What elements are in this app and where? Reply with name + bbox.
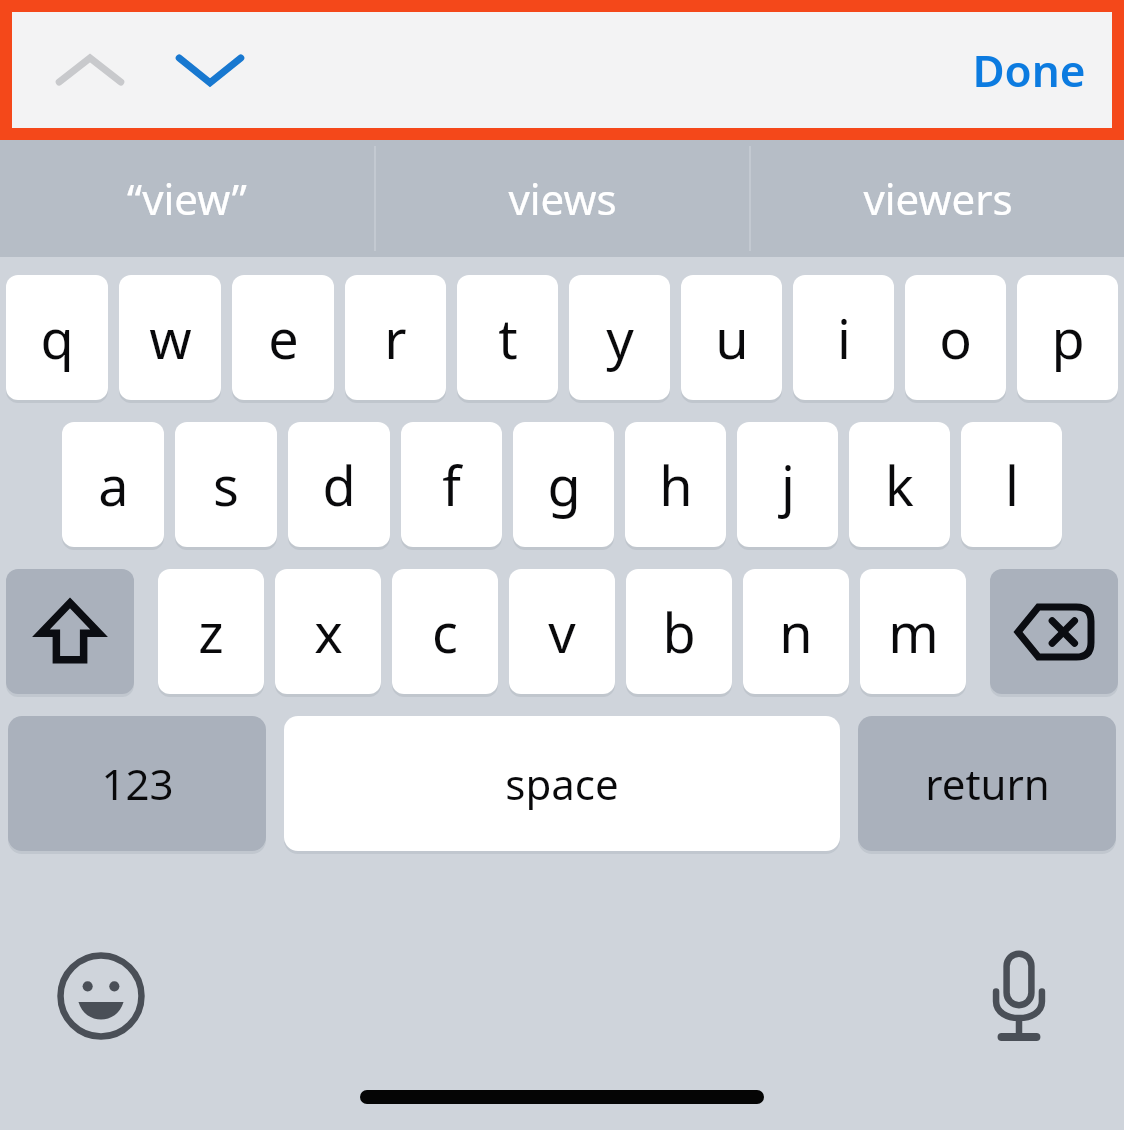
button[interactable]: i	[793, 275, 894, 400]
button[interactable]: u	[681, 275, 782, 400]
staticText: z	[198, 595, 224, 669]
button[interactable]: a	[62, 422, 164, 547]
staticText: l	[1005, 448, 1019, 522]
button[interactable]: v	[509, 569, 615, 694]
staticText: j	[781, 448, 795, 522]
button[interactable]: k	[849, 422, 950, 547]
staticText: h	[659, 448, 693, 522]
button[interactable]: Previous field	[36, 24, 144, 116]
button[interactable]: s	[175, 422, 277, 547]
staticText: t	[498, 301, 518, 375]
button[interactable]: j	[737, 422, 838, 547]
staticText: viewers	[863, 170, 1013, 227]
staticText: views	[508, 170, 617, 227]
button[interactable]: Emoji keyboard	[46, 941, 156, 1051]
staticText: k	[885, 448, 914, 522]
staticText: m	[888, 595, 939, 669]
button[interactable]: space	[284, 716, 840, 851]
staticText: v	[548, 595, 576, 669]
staticText: o	[939, 301, 972, 375]
staticText: r	[384, 301, 407, 375]
button[interactable]: views	[376, 140, 749, 257]
button[interactable]: p	[1017, 275, 1118, 400]
button[interactable]: e	[232, 275, 334, 400]
button[interactable]: y	[569, 275, 670, 400]
button[interactable]: c	[392, 569, 498, 694]
staticText: w	[149, 301, 192, 375]
button[interactable]: o	[905, 275, 1006, 400]
staticText: a	[98, 448, 129, 522]
staticText: g	[547, 448, 581, 522]
staticText: y	[606, 301, 634, 375]
button[interactable]: “view”	[0, 140, 374, 257]
button[interactable]: h	[625, 422, 726, 547]
button[interactable]: 123	[8, 716, 266, 851]
staticText: u	[715, 301, 749, 375]
staticText: s	[213, 448, 239, 522]
staticText: f	[442, 448, 461, 522]
button[interactable]: viewers	[751, 140, 1124, 257]
button[interactable]: z	[158, 569, 264, 694]
staticText: “view”	[127, 170, 247, 227]
button[interactable]: t	[457, 275, 558, 400]
staticText: return	[925, 755, 1050, 812]
button[interactable]: m	[860, 569, 966, 694]
button[interactable]: n	[743, 569, 849, 694]
button[interactable]: l	[961, 422, 1062, 547]
button[interactable]: d	[288, 422, 390, 547]
staticText: b	[662, 595, 696, 669]
button[interactable]: b	[626, 569, 732, 694]
button[interactable]: g	[513, 422, 614, 547]
button[interactable]: Backspace	[990, 569, 1118, 694]
button[interactable]: Next field	[156, 24, 264, 116]
staticText: d	[322, 448, 356, 522]
staticText: x	[314, 595, 343, 669]
staticText: space	[505, 755, 619, 812]
button[interactable]: r	[345, 275, 446, 400]
button[interactable]: f	[401, 422, 502, 547]
staticText: n	[779, 595, 813, 669]
staticText: i	[837, 301, 851, 375]
staticText: p	[1051, 301, 1085, 375]
staticText: q	[40, 301, 74, 375]
staticText: e	[268, 301, 299, 375]
button[interactable]: w	[119, 275, 221, 400]
button[interactable]: x	[275, 569, 381, 694]
button[interactable]: q	[6, 275, 108, 400]
button[interactable]: return	[858, 716, 1116, 851]
staticText: c	[432, 595, 458, 669]
button[interactable]: Done	[946, 12, 1112, 128]
staticText: 123	[101, 755, 174, 812]
button[interactable]: Shift	[6, 569, 134, 694]
button[interactable]: Dictation	[964, 941, 1074, 1051]
staticText: Done	[972, 40, 1086, 100]
